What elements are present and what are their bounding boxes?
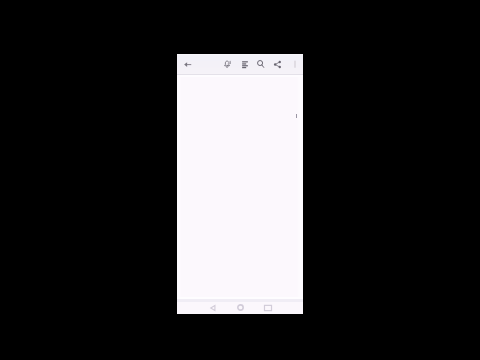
button[interactable]: Navigate up — [180, 57, 194, 71]
button[interactable]: Search — [254, 58, 267, 70]
button[interactable]: Home — [234, 302, 246, 313]
button[interactable]: Back — [207, 302, 219, 313]
button[interactable]: Notifications off — [221, 58, 234, 70]
button[interactable]: Article — [238, 58, 251, 70]
button[interactable]: Recent apps — [262, 302, 274, 313]
button[interactable]: Share — [271, 58, 284, 70]
button[interactable]: More options — [289, 58, 300, 70]
